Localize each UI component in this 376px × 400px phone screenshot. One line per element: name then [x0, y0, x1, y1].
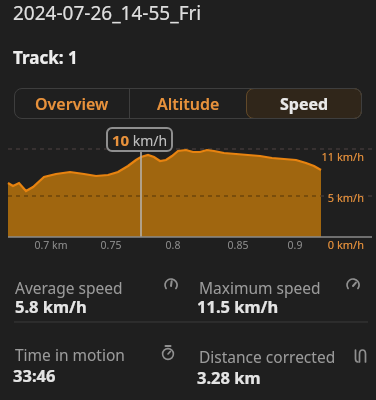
staticText: Average speed — [15, 277, 123, 298]
staticText: 0.8 — [153, 238, 193, 252]
button[interactable]: Overview — [14, 88, 129, 119]
staticText: 11 km/h — [308, 149, 364, 164]
staticText: 5 km/h — [308, 190, 364, 205]
staticText: 0.7 km — [31, 238, 71, 252]
staticText: 0.85 — [218, 238, 258, 252]
staticText: Overview — [35, 93, 109, 115]
staticText: Maximum speed — [199, 277, 321, 298]
staticText: 0.9 — [275, 238, 315, 252]
staticText: Distance corrected — [199, 346, 336, 367]
staticText: Track: 1 — [13, 46, 78, 69]
staticText: Time in motion — [15, 344, 125, 365]
staticText: 33:46 — [13, 364, 56, 386]
staticText: 5.8 km/h — [15, 295, 87, 317]
staticText: Speed — [280, 93, 329, 115]
staticText: 3.28 km — [197, 366, 261, 388]
button[interactable]: Speed — [246, 88, 362, 119]
staticText: 11.5 km/h — [197, 295, 279, 317]
staticText: Altitude — [157, 93, 220, 115]
staticText: 0.75 — [91, 238, 131, 252]
staticText: 10 km/h — [112, 130, 168, 150]
staticText: 2024-07-26_14-55_Fri — [13, 0, 202, 26]
button[interactable]: Altitude — [130, 88, 246, 119]
staticText: 0 km/h — [308, 237, 364, 252]
